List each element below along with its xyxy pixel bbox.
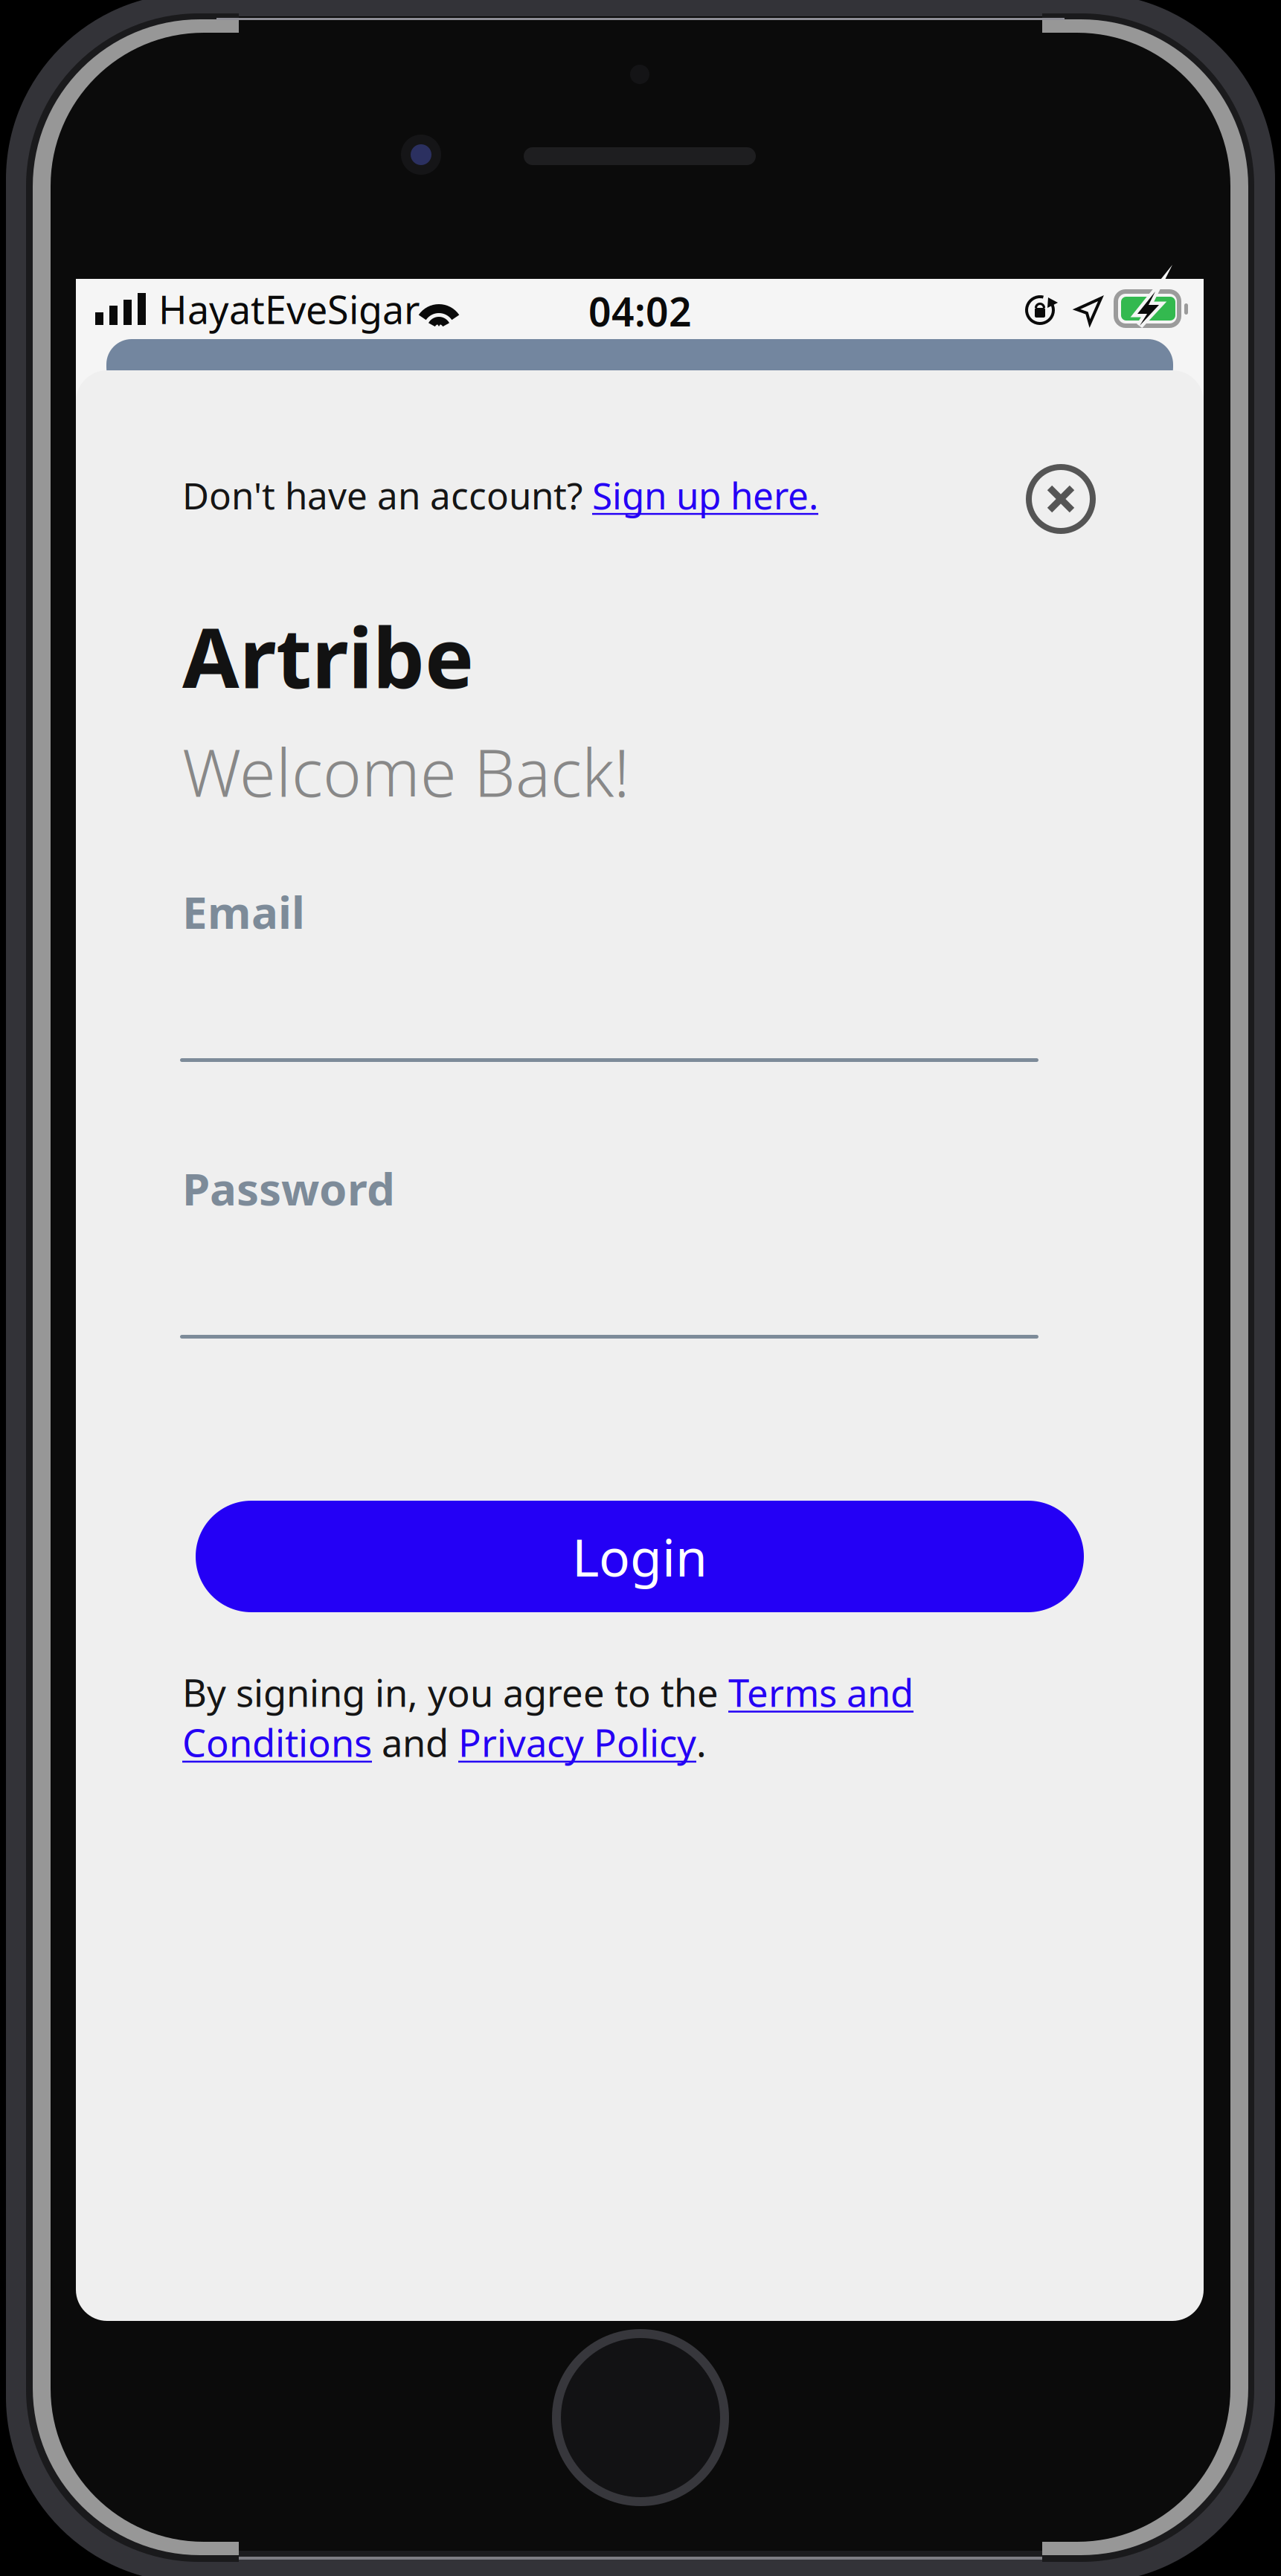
staticText: Terms and bbox=[728, 1667, 914, 1717]
staticText: 04:02 bbox=[588, 285, 692, 337]
staticText: and bbox=[372, 1717, 458, 1767]
staticText: Privacy Policy bbox=[458, 1717, 696, 1767]
staticText: Conditions bbox=[182, 1717, 372, 1767]
button[interactable]: Conditions bbox=[182, 1717, 372, 1767]
button[interactable]: Terms and bbox=[728, 1667, 914, 1717]
staticText: Email bbox=[182, 882, 305, 941]
staticText: By signing in, you agree to the bbox=[182, 1667, 728, 1717]
staticText: Don't have an account? bbox=[182, 471, 592, 519]
staticText: Login bbox=[572, 1522, 707, 1591]
button[interactable]: Close bbox=[1022, 460, 1099, 538]
staticText: HayatEveSigar bbox=[158, 283, 420, 335]
staticText: Welcome Back! bbox=[182, 728, 630, 815]
button[interactable]: Login bbox=[196, 1501, 1084, 1612]
button[interactable]: Sign up here. bbox=[592, 471, 818, 519]
staticText: . bbox=[696, 1717, 707, 1767]
staticText: Sign up here. bbox=[592, 471, 818, 519]
staticText: Artribe bbox=[182, 602, 474, 711]
button[interactable]: Privacy Policy bbox=[458, 1717, 696, 1767]
staticText: Password bbox=[182, 1159, 395, 1218]
